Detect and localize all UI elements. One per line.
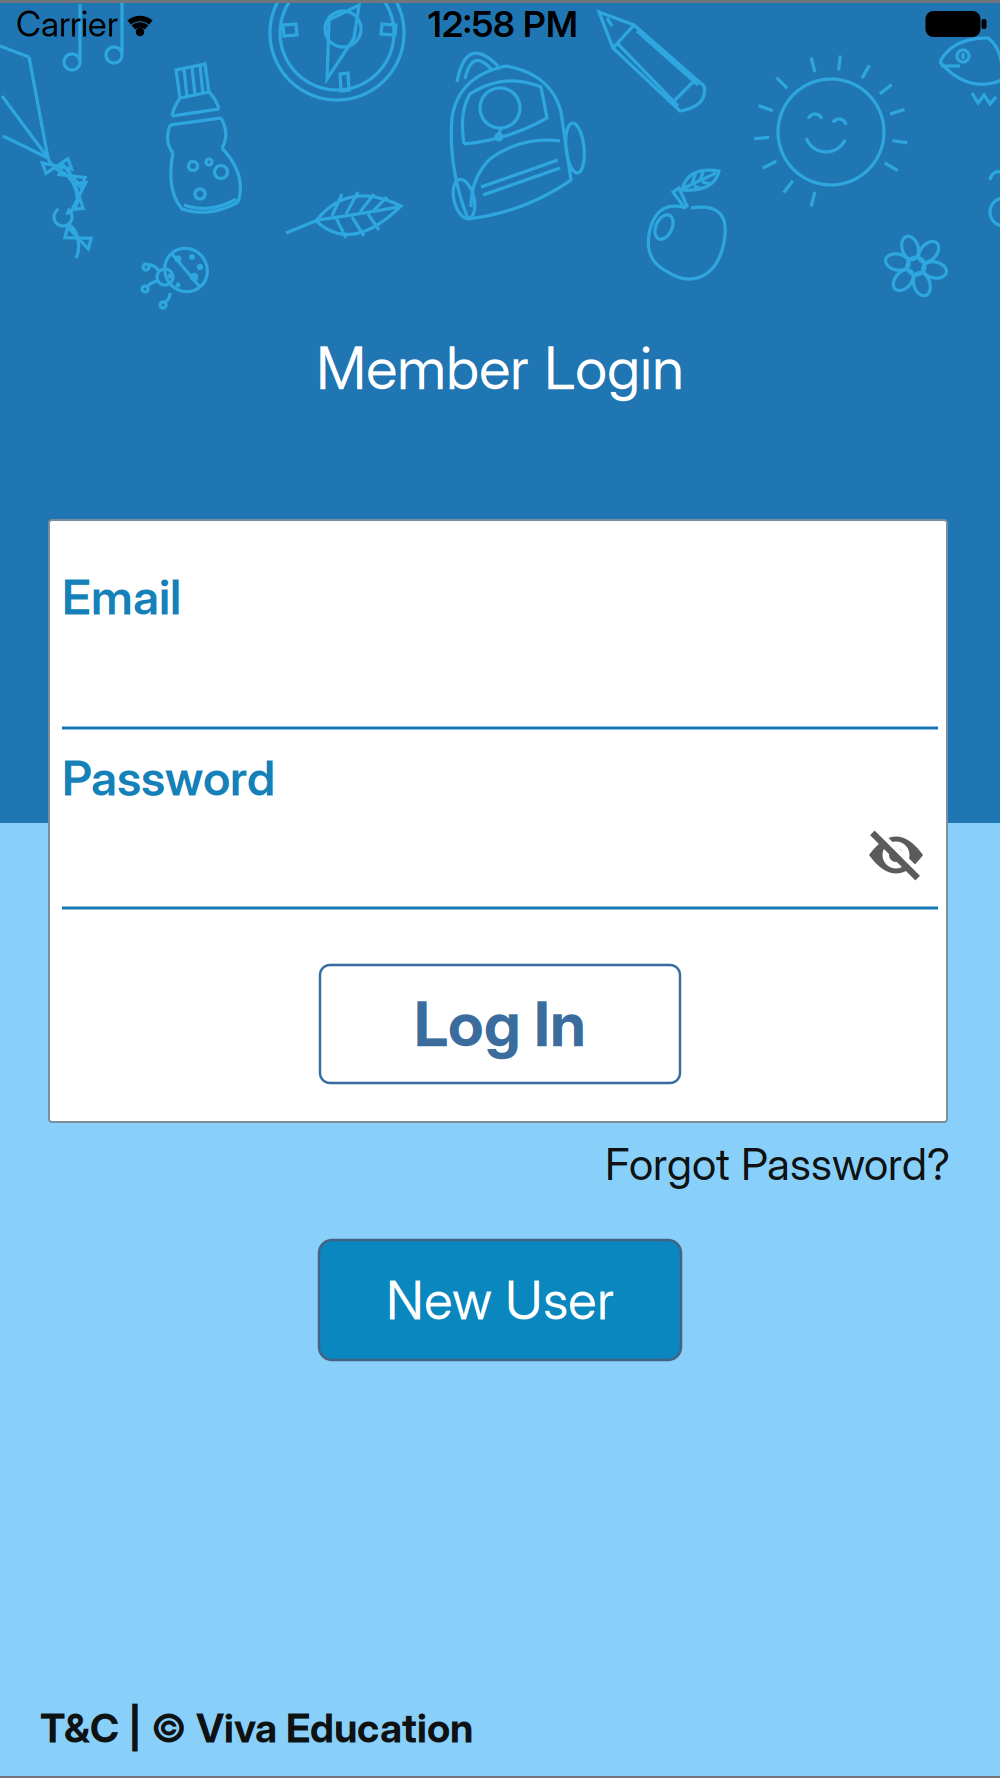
staticText: T&C | © Viva Education bbox=[40, 1704, 473, 1752]
staticText: Carrier bbox=[16, 4, 118, 44]
button[interactable] bbox=[0, 0, 1000, 1778]
staticText: Forgot Password? bbox=[605, 1138, 950, 1190]
staticText: Log In bbox=[414, 988, 586, 1060]
button[interactable]: Forgot Password? bbox=[50, 1138, 950, 1190]
button[interactable]: T&C | © Viva Education bbox=[40, 1704, 960, 1752]
staticText: Member Login bbox=[316, 333, 684, 403]
staticText: Email bbox=[62, 569, 181, 625]
button[interactable]: New User bbox=[319, 1240, 681, 1360]
button[interactable]: Log In bbox=[320, 965, 680, 1083]
staticText: New User bbox=[386, 1268, 614, 1331]
staticText: 12:58 PM bbox=[428, 3, 578, 45]
staticText: Password bbox=[62, 750, 275, 806]
